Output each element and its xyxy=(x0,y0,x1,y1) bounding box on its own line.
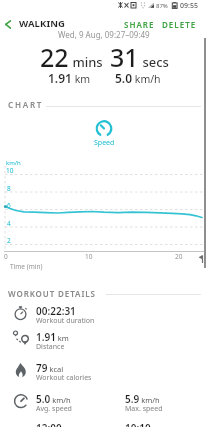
button[interactable]: SHARE xyxy=(120,15,159,34)
button[interactable]: 5.9 km/h xyxy=(125,392,163,416)
staticText: 09:55 xyxy=(180,1,198,11)
staticText: DELETE xyxy=(162,19,197,30)
staticText: 8 xyxy=(7,184,11,193)
staticText: Avg. speed xyxy=(36,404,72,414)
staticText: 10 xyxy=(85,252,93,261)
staticText: secs xyxy=(139,53,169,71)
staticText: 31 xyxy=(110,40,139,74)
staticText: 5.0 km/h xyxy=(115,70,161,86)
staticText: 10:10 /km xyxy=(125,421,167,427)
staticText: 87% xyxy=(156,2,168,10)
staticText: 1.91 km xyxy=(36,330,69,344)
staticText: 2 xyxy=(7,236,11,245)
staticText: km/h xyxy=(6,159,21,167)
staticText: Distance xyxy=(36,342,65,352)
staticText: 4 xyxy=(7,219,11,228)
button[interactable]: 79 kcal xyxy=(12,361,202,385)
staticText: 5.9 km/h xyxy=(125,392,160,406)
staticText: Workout duration xyxy=(36,316,95,326)
staticText: 00:22:31 xyxy=(36,304,76,318)
staticText: 6 xyxy=(7,201,11,210)
staticText: Workout calories xyxy=(36,373,92,383)
staticText: CHART xyxy=(8,99,44,110)
staticText: 12:00 /km xyxy=(36,421,78,427)
button[interactable]: 00:22:31 xyxy=(12,304,202,328)
staticText: Wed, 9 Aug, 09:27–09:49 xyxy=(58,29,150,40)
button[interactable]: Speed xyxy=(84,117,124,149)
staticText: 1.91 km xyxy=(48,70,91,86)
staticText: Speed xyxy=(94,138,115,148)
staticText: 79 kcal xyxy=(36,361,64,375)
staticText: 22 xyxy=(40,40,69,74)
button[interactable]: 5.0 km/h xyxy=(12,392,202,416)
staticText: Time (min) xyxy=(10,262,43,271)
staticText: WORKOUT DETAILS xyxy=(8,288,96,299)
staticText: mins xyxy=(69,53,110,71)
staticText: WALKING xyxy=(19,17,65,30)
staticText: 0 xyxy=(4,252,8,261)
staticText: 5.0 km/h xyxy=(36,392,71,406)
button[interactable]: 1.91 km xyxy=(12,330,202,354)
staticText: 20 xyxy=(175,252,183,261)
button[interactable]: DELETE xyxy=(158,15,201,34)
staticText: 10 xyxy=(6,166,14,175)
button[interactable] xyxy=(0,10,18,31)
staticText: Max. speed xyxy=(125,404,163,414)
staticText: SHARE xyxy=(124,19,155,30)
